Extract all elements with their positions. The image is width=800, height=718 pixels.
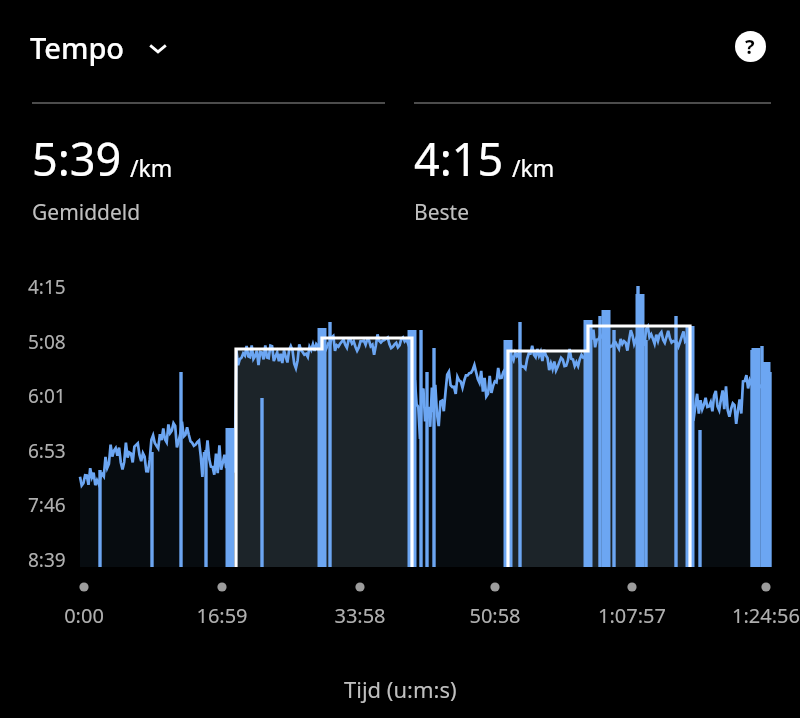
staticText: Tempo [30,28,125,67]
button[interactable]: Help [728,24,772,68]
staticText: 1:24:56 [732,602,800,629]
staticText: 16:59 [196,602,248,629]
staticText: 4:15 [28,274,66,300]
staticText: 4:15 [414,128,504,189]
staticText: Beste [414,198,469,227]
staticText: 5:08 [28,329,66,355]
staticText: 50:58 [469,602,521,629]
staticText: 6:53 [28,438,66,464]
staticText: 33:58 [334,602,386,629]
staticText: Tijd (u:m:s) [344,674,457,704]
staticText: Gemiddeld [32,198,141,227]
staticText: 8:39 [28,547,66,573]
staticText: 7:46 [28,492,66,518]
staticText: ? [745,33,755,60]
staticText: 5:39 [32,128,122,189]
staticText: /km [130,152,173,183]
staticText: 6:01 [28,383,66,409]
staticText: /km [512,152,555,183]
button[interactable]: Tempo [26,24,175,71]
staticText: 0:00 [64,602,104,629]
staticText: 1:07:57 [598,602,666,629]
